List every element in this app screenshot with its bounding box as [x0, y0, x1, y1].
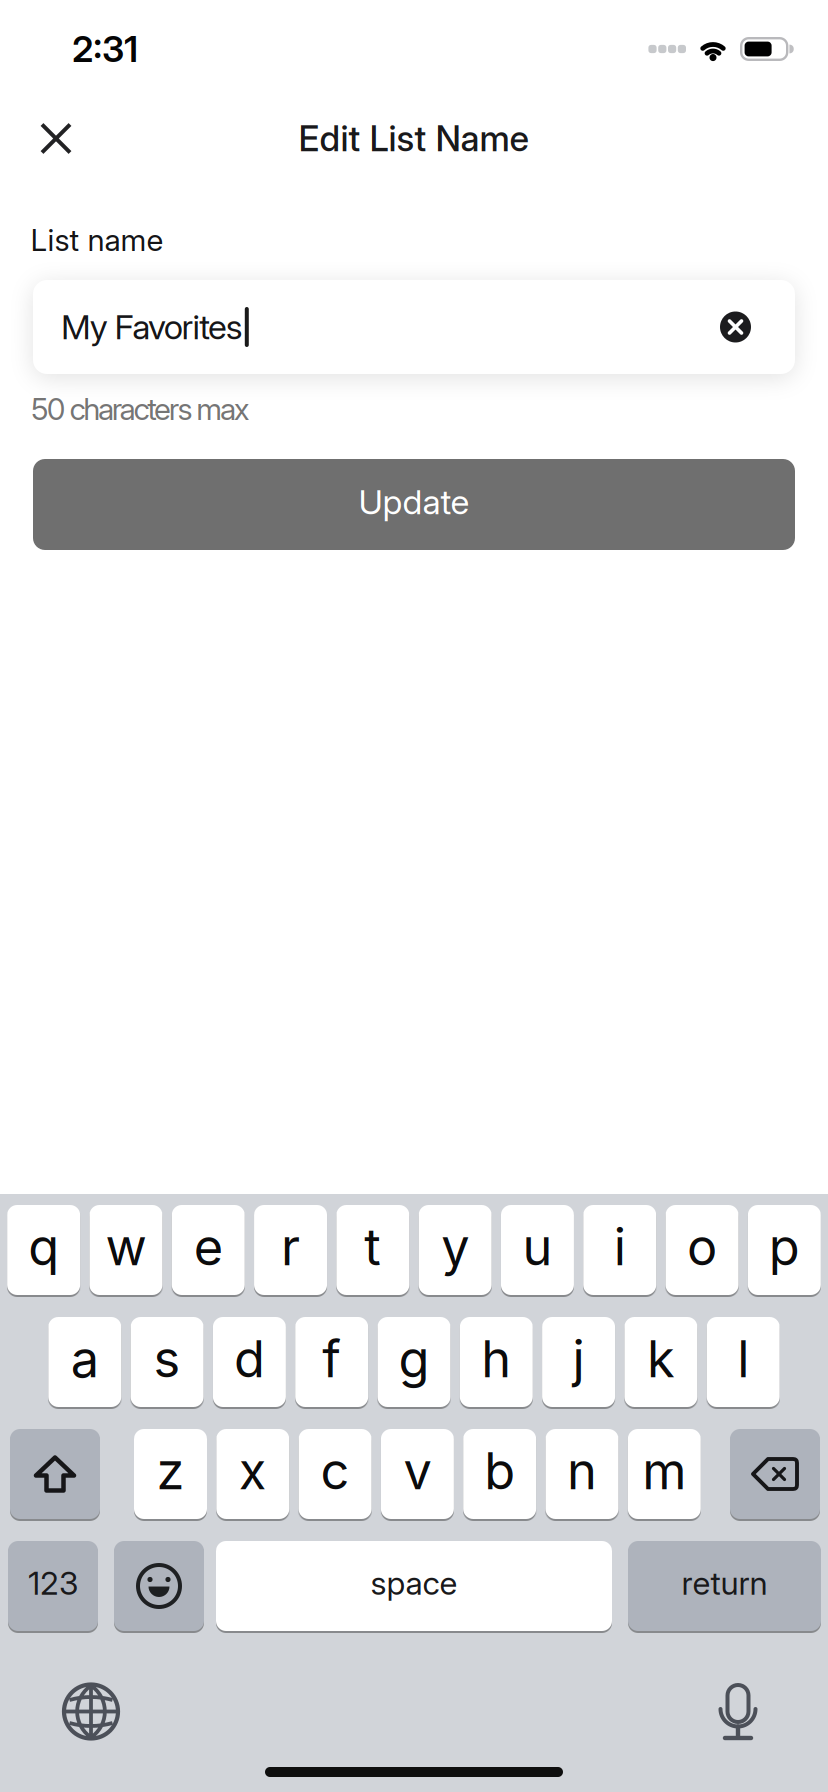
button[interactable]: p: [748, 1205, 821, 1295]
button[interactable]: f: [295, 1317, 368, 1407]
button[interactable]: o: [665, 1205, 738, 1295]
staticText: z: [156, 1440, 184, 1501]
button[interactable]: Shift: [10, 1429, 100, 1519]
staticText: r: [281, 1216, 300, 1277]
button[interactable]: r: [254, 1205, 327, 1295]
button[interactable]: Delete: [730, 1429, 820, 1519]
button[interactable]: Next keyboard: [64, 1684, 118, 1738]
staticText: h: [481, 1328, 511, 1389]
staticText: space: [370, 1564, 457, 1602]
staticText: Update: [358, 481, 469, 522]
button[interactable]: g: [377, 1317, 450, 1407]
staticText: o: [687, 1216, 717, 1277]
staticText: c: [321, 1440, 350, 1501]
staticText: q: [28, 1216, 59, 1277]
button[interactable]: c: [299, 1429, 372, 1519]
button[interactable]: s: [131, 1317, 204, 1407]
button[interactable]: a: [48, 1317, 121, 1407]
button[interactable]: h: [460, 1317, 533, 1407]
staticText: u: [522, 1216, 552, 1277]
staticText: t: [364, 1216, 381, 1277]
staticText: 2:31: [72, 27, 138, 71]
staticText: x: [239, 1440, 267, 1501]
button[interactable]: x: [216, 1429, 289, 1519]
button[interactable]: u: [501, 1205, 574, 1295]
button[interactable]: t: [336, 1205, 409, 1295]
staticText: return: [681, 1564, 767, 1602]
button[interactable]: b: [463, 1429, 536, 1519]
button[interactable]: e: [172, 1205, 245, 1295]
staticText: p: [769, 1216, 800, 1277]
staticText: k: [647, 1328, 675, 1389]
button[interactable]: d: [213, 1317, 286, 1407]
button[interactable]: z: [134, 1429, 207, 1519]
button[interactable]: Close: [0, 122, 72, 154]
button[interactable]: Update: [33, 459, 795, 550]
staticText: l: [737, 1328, 749, 1389]
button[interactable]: k: [624, 1317, 697, 1407]
staticText: List name: [30, 222, 163, 258]
staticText: g: [398, 1328, 429, 1389]
button[interactable]: w: [89, 1205, 162, 1295]
button[interactable]: n: [545, 1429, 618, 1519]
button[interactable]: q: [7, 1205, 80, 1295]
button[interactable]: space: [216, 1541, 612, 1631]
button[interactable]: Dictate: [710, 1683, 766, 1740]
staticText: m: [642, 1440, 686, 1501]
staticText: f: [322, 1328, 341, 1389]
button[interactable]: m: [628, 1429, 701, 1519]
staticText: n: [567, 1440, 597, 1501]
staticText: e: [194, 1216, 223, 1277]
button[interactable]: y: [419, 1205, 492, 1295]
staticText: s: [154, 1328, 181, 1389]
staticText: j: [573, 1328, 585, 1389]
staticText: v: [403, 1440, 431, 1501]
button[interactable]: Numbers: [8, 1541, 98, 1631]
button[interactable]: List name text field: [33, 280, 795, 374]
button[interactable]: l: [707, 1317, 780, 1407]
staticText: b: [484, 1440, 515, 1501]
button[interactable]: return: [628, 1541, 821, 1631]
staticText: 50 characters max: [31, 391, 250, 427]
staticText: i: [614, 1216, 626, 1277]
button[interactable]: j: [542, 1317, 615, 1407]
button[interactable]: i: [583, 1205, 656, 1295]
staticText: 123: [28, 1564, 78, 1602]
button[interactable]: Emoji: [114, 1541, 204, 1631]
staticText: d: [234, 1328, 265, 1389]
staticText: y: [441, 1216, 469, 1277]
staticText: Edit List Name: [298, 117, 529, 160]
staticText: a: [71, 1328, 99, 1389]
staticText: w: [105, 1216, 146, 1277]
button[interactable]: v: [381, 1429, 454, 1519]
staticText: My Favorites: [61, 306, 243, 347]
button[interactable]: Clear text: [720, 311, 751, 342]
